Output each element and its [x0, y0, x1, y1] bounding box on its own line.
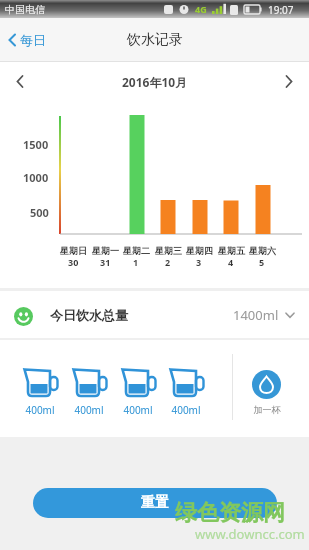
button[interactable]: 400ml	[114, 360, 162, 422]
staticText: 饮水记录	[127, 31, 183, 49]
button[interactable]: 400ml	[65, 360, 113, 422]
button[interactable]: 重置	[33, 488, 277, 518]
staticText: 5	[259, 256, 265, 268]
staticText: 今日饮水总量	[50, 307, 128, 323]
staticText: 400ml	[114, 403, 162, 417]
button[interactable]: 今日饮水总量	[0, 291, 309, 338]
staticText: 19:07	[268, 3, 294, 17]
staticText: 31	[100, 256, 111, 268]
staticText: 加一杯	[239, 404, 295, 415]
staticText: 30	[68, 256, 79, 268]
staticText: 星期三	[155, 245, 182, 256]
staticText: 星期一	[92, 245, 119, 256]
staticText: www.downcc.com	[195, 525, 305, 543]
staticText: 500	[30, 205, 49, 218]
staticText: 400ml	[16, 403, 64, 417]
button[interactable]: 400ml	[16, 360, 64, 422]
button[interactable]: 每日	[8, 32, 46, 48]
staticText: 星期日	[60, 245, 87, 256]
staticText: 星期二	[123, 245, 150, 256]
staticText: 3	[196, 256, 202, 268]
staticText: 星期五	[218, 245, 245, 256]
button[interactable]: 400ml	[162, 360, 210, 422]
staticText: 4G	[195, 3, 207, 15]
staticText: 绿色资源网	[175, 499, 285, 527]
staticText: 重置	[141, 494, 169, 512]
staticText: 400ml	[65, 403, 113, 417]
staticText: 1000	[23, 170, 49, 183]
staticText: 400ml	[162, 403, 210, 417]
staticText: 1	[133, 256, 139, 268]
staticText: 1500	[23, 137, 49, 150]
staticText: 每日	[20, 32, 46, 48]
button[interactable]	[0, 62, 40, 101]
staticText: 2016年10月	[122, 74, 188, 90]
button[interactable]	[269, 62, 309, 101]
staticText: 星期六	[249, 245, 276, 256]
staticText: 4	[228, 256, 234, 268]
staticText: 2	[165, 256, 171, 268]
staticText: 中国电信	[5, 3, 45, 16]
staticText: 1400ml	[233, 306, 279, 324]
button[interactable]: 加一杯	[239, 366, 295, 422]
staticText: 星期四	[186, 245, 213, 256]
